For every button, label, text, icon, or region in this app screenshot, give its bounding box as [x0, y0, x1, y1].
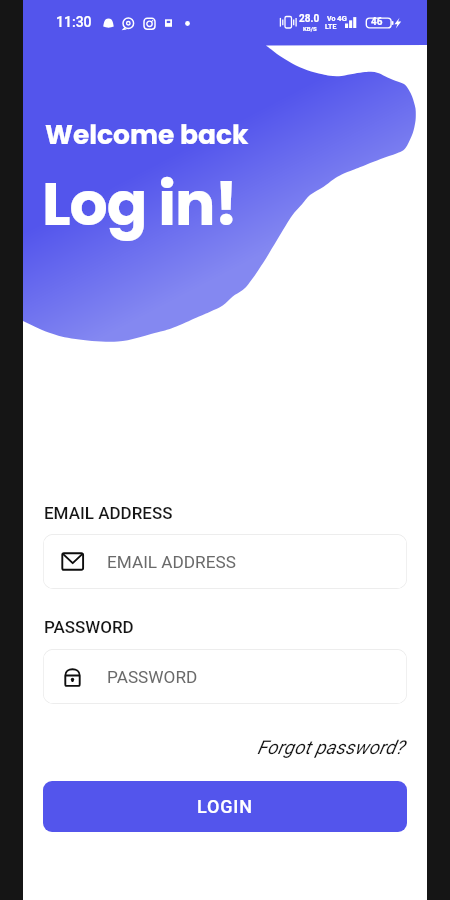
- staticText: Vo: [327, 15, 336, 23]
- staticText: Welcome back: [45, 116, 249, 153]
- button[interactable]: LOGIN: [43, 781, 407, 832]
- button[interactable]: EMAIL ADDRESS: [43, 534, 407, 589]
- staticText: PASSWORD: [107, 667, 198, 687]
- staticText: Forgot password?: [257, 736, 405, 758]
- button[interactable]: Forgot password?: [255, 734, 407, 760]
- staticText: KB/S: [303, 25, 317, 32]
- staticText: EMAIL ADDRESS: [44, 503, 173, 523]
- staticText: 28.0: [299, 13, 320, 25]
- staticText: 46: [371, 16, 383, 28]
- staticText: 11:30: [56, 14, 92, 30]
- staticText: 4G: [337, 14, 348, 23]
- staticText: EMAIL ADDRESS: [107, 552, 236, 572]
- button[interactable]: PASSWORD: [43, 649, 407, 704]
- staticText: LOGIN: [197, 796, 253, 817]
- staticText: Log in!: [42, 162, 237, 246]
- staticText: PASSWORD: [44, 617, 134, 637]
- staticText: LTE: [325, 23, 337, 31]
